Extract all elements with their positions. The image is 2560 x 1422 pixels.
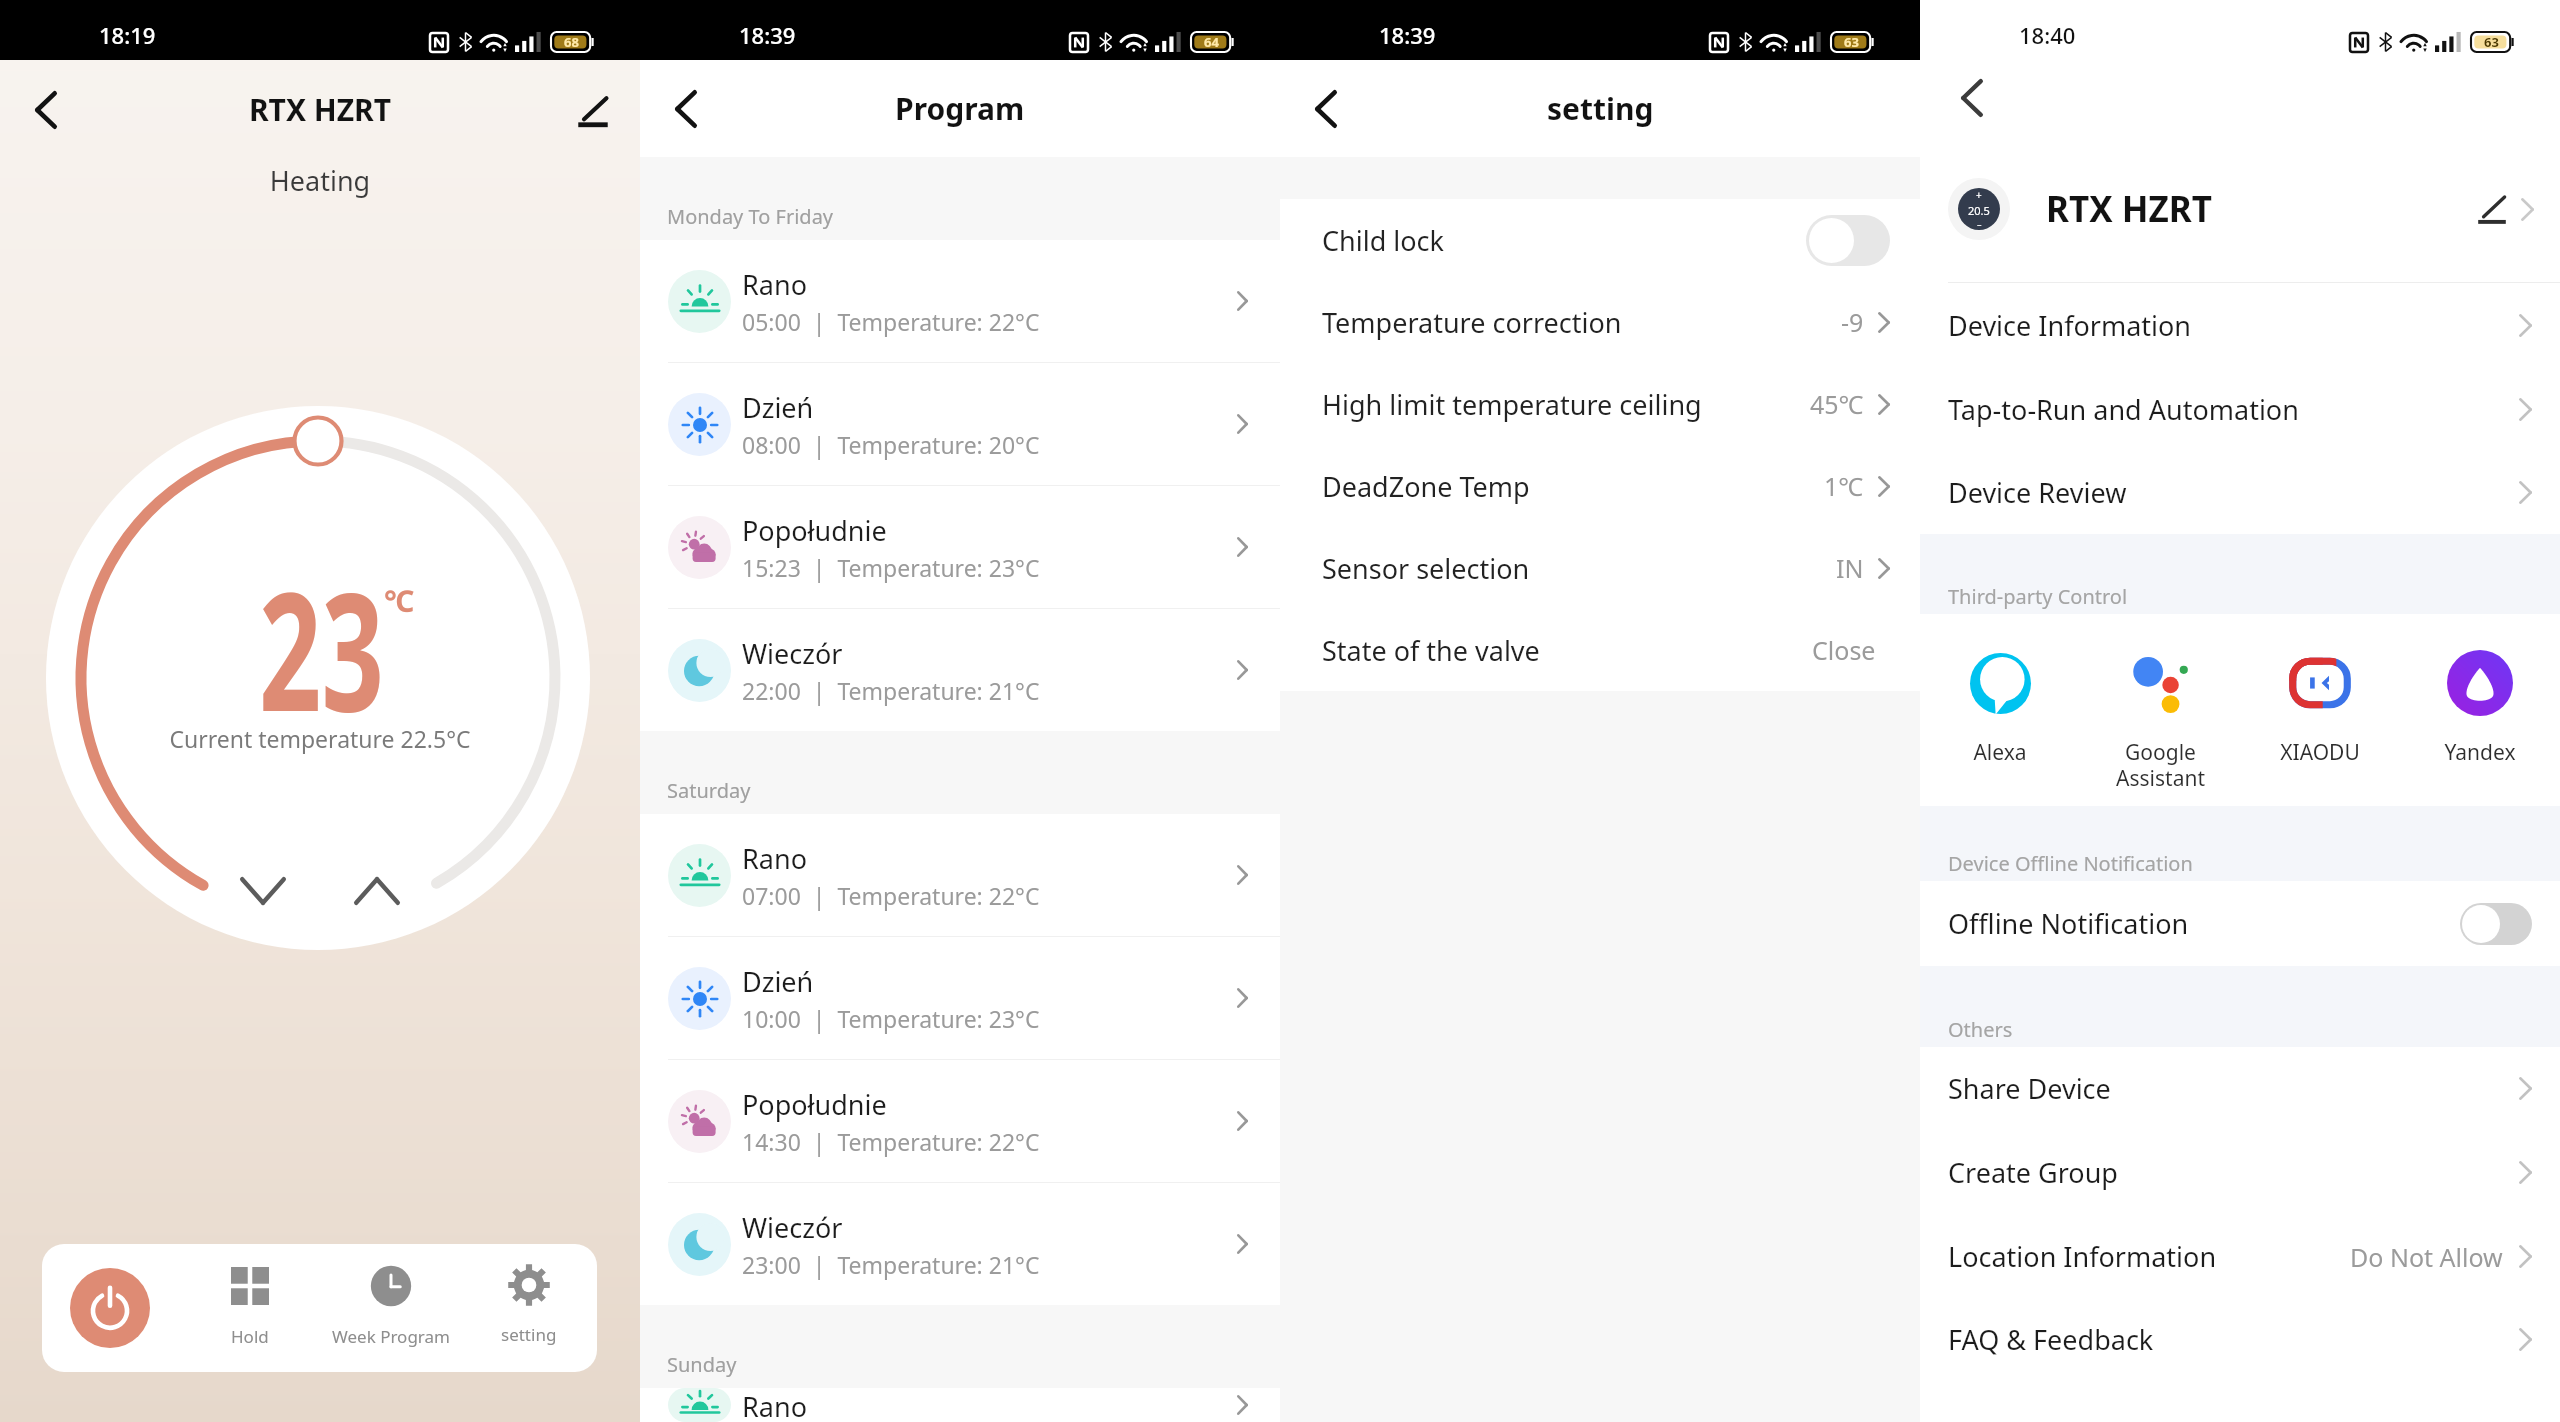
staticText: FAQ & Feedback xyxy=(1948,1321,2519,1358)
button[interactable]: Power xyxy=(70,1268,150,1348)
button[interactable]: Back xyxy=(20,84,72,136)
staticText: Program xyxy=(895,88,1025,129)
staticText: 18:39 xyxy=(1379,20,1436,50)
staticText: setting xyxy=(1547,88,1654,129)
button[interactable]: Dzień xyxy=(640,363,1280,485)
staticText: Close xyxy=(1812,633,1876,667)
staticText: Rano xyxy=(742,840,807,877)
button[interactable]: Back xyxy=(1300,83,1352,135)
staticText: Week Program xyxy=(332,1325,450,1348)
staticText: 18:40 xyxy=(2019,20,2076,50)
button[interactable]: Sensor selection xyxy=(1280,527,1920,609)
button[interactable]: State of the valve xyxy=(1280,609,1920,691)
button[interactable]: Back xyxy=(660,83,712,135)
staticText: 15:23 | Temperature: 23°C xyxy=(742,552,1040,583)
staticText: + xyxy=(1976,188,1982,202)
staticText: 18:19 xyxy=(99,20,156,50)
staticText: Do Not Allow xyxy=(2350,1240,2503,1274)
staticText: Create Group xyxy=(1948,1154,2519,1191)
staticText: Device Information xyxy=(1948,307,2519,344)
button[interactable]: Rano xyxy=(640,814,1280,936)
button[interactable]: Wieczór xyxy=(640,1183,1280,1305)
button[interactable]: High limit temperature ceiling xyxy=(1280,363,1920,445)
staticText: -9 xyxy=(1841,305,1864,339)
button[interactable]: Alexa xyxy=(1920,614,2080,806)
button[interactable]: Week Program xyxy=(316,1252,466,1364)
staticText: Monday To Friday xyxy=(667,203,834,230)
button[interactable]: Tap-to-Run and Automation xyxy=(1920,367,2560,451)
staticText: Dzień xyxy=(742,963,814,1000)
button[interactable]: DeadZone Temp xyxy=(1280,445,1920,527)
staticText: 23 xyxy=(259,536,384,759)
button[interactable]: FAQ & Feedback xyxy=(1920,1298,2560,1381)
staticText: Location Information xyxy=(1948,1238,2350,1275)
button[interactable]: Hold xyxy=(175,1252,325,1364)
staticText: Popołudnie xyxy=(742,1086,887,1123)
staticText: Child lock xyxy=(1322,222,1806,259)
staticText: 63 xyxy=(2484,33,2499,51)
button[interactable]: setting xyxy=(454,1252,597,1364)
button[interactable]: Back xyxy=(1946,72,1998,124)
staticText: Google Assistant xyxy=(2116,738,2205,793)
button[interactable]: Dzień xyxy=(640,937,1280,1059)
staticText: ℃ xyxy=(384,580,415,621)
staticText: 18:39 xyxy=(739,20,796,50)
staticText: 07:00 | Temperature: 22°C xyxy=(742,880,1040,911)
button[interactable]: Decrease temperature xyxy=(235,863,291,919)
staticText: 1℃ xyxy=(1824,469,1864,503)
staticText: – xyxy=(1977,218,1982,230)
button[interactable]: Rano xyxy=(640,240,1280,362)
staticText: Tap-to-Run and Automation xyxy=(1948,391,2519,428)
button[interactable]: Increase temperature xyxy=(349,863,405,919)
button[interactable]: Google Assistant xyxy=(2080,614,2240,806)
staticText: Device Review xyxy=(1948,474,2519,511)
staticText: Heating xyxy=(0,162,640,199)
staticText: 05:00 | Temperature: 22°C xyxy=(742,306,1040,337)
staticText: Current temperature 22.5°C xyxy=(0,723,640,754)
button[interactable]: Share Device xyxy=(1920,1047,2560,1130)
staticText: Dzień xyxy=(742,389,814,426)
button[interactable]: Device Review xyxy=(1920,451,2560,534)
button[interactable]: Create Group xyxy=(1920,1130,2560,1215)
staticText: Popołudnie xyxy=(742,512,887,549)
staticText: 68 xyxy=(564,33,579,51)
button[interactable]: Rano xyxy=(640,1388,1280,1422)
staticText: RTX HZRT xyxy=(0,89,640,130)
staticText: Yandex xyxy=(2444,738,2516,767)
button[interactable]: Edit device name xyxy=(568,86,618,136)
staticText: Device Offline Notification xyxy=(1948,850,2193,877)
staticText: setting xyxy=(501,1323,557,1346)
staticText: 63 xyxy=(1844,33,1859,51)
button[interactable]: Rename device xyxy=(2472,186,2512,232)
staticText: Offline Notification xyxy=(1948,905,2460,942)
button[interactable]: Offline Notification xyxy=(1920,881,2560,966)
staticText: Third-party Control xyxy=(1948,583,2128,610)
staticText: Hold xyxy=(231,1325,269,1348)
button[interactable]: Popołudnie xyxy=(640,1060,1280,1182)
button[interactable]: Location Information xyxy=(1920,1215,2560,1298)
staticText: Alexa xyxy=(1973,738,2027,767)
staticText: Saturday xyxy=(667,777,751,804)
staticText: Temperature correction xyxy=(1322,304,1841,341)
button[interactable]: XIAODU xyxy=(2240,614,2400,806)
staticText: Others xyxy=(1948,1016,2013,1043)
button[interactable]: + xyxy=(1920,136,2560,282)
staticText: Wieczór xyxy=(742,635,843,672)
button[interactable]: Child lock xyxy=(1280,199,1920,281)
button[interactable]: Popołudnie xyxy=(640,486,1280,608)
staticText: High limit temperature ceiling xyxy=(1322,386,1810,423)
staticText: 08:00 | Temperature: 20°C xyxy=(742,429,1040,460)
staticText: 45℃ xyxy=(1810,387,1864,421)
button[interactable]: Device Information xyxy=(1920,283,2560,367)
button[interactable]: Yandex xyxy=(2400,614,2560,806)
staticText: IN xyxy=(1836,551,1864,585)
staticText: 23:00 | Temperature: 21°C xyxy=(742,1249,1040,1280)
staticText: 10:00 | Temperature: 23°C xyxy=(742,1003,1040,1034)
staticText: RTX HZRT xyxy=(2046,185,2472,233)
button[interactable]: Temperature correction xyxy=(1280,281,1920,363)
staticText: Wieczór xyxy=(742,1209,843,1246)
staticText: Rano xyxy=(742,1388,807,1422)
staticText: Sunday xyxy=(667,1351,737,1378)
staticText: 64 xyxy=(1204,33,1219,51)
button[interactable]: Wieczór xyxy=(640,609,1280,731)
